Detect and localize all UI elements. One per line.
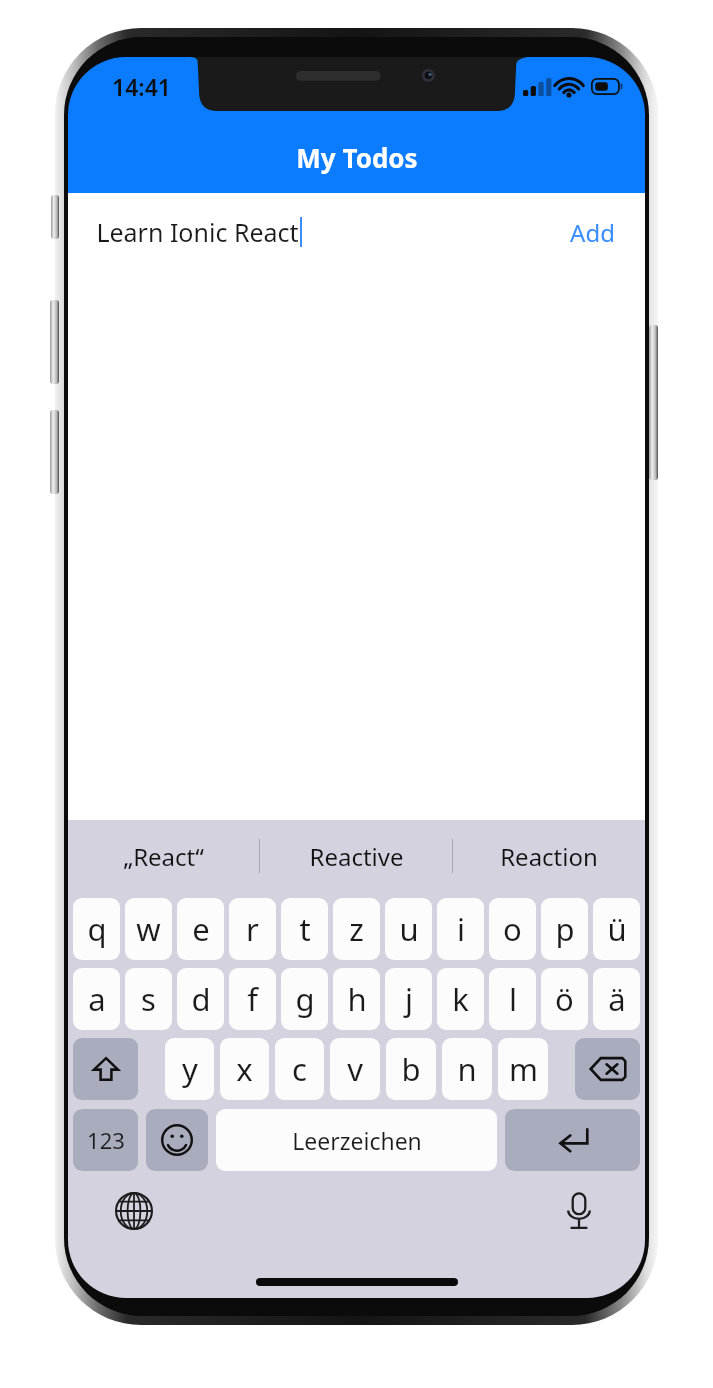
button[interactable]: s: [125, 968, 172, 1030]
staticText: Reactive: [309, 840, 404, 873]
button[interactable]: q: [73, 898, 120, 960]
staticText: t: [299, 908, 311, 950]
staticText: g: [295, 978, 315, 1020]
staticText: c: [292, 1048, 307, 1090]
button[interactable]: t: [281, 898, 328, 960]
button[interactable]: Leerzeichen: [216, 1109, 497, 1171]
staticText: d: [191, 978, 211, 1020]
button[interactable]: Change keyboard language: [108, 1185, 160, 1237]
button[interactable]: j: [385, 968, 432, 1030]
staticText: u: [399, 908, 419, 950]
button[interactable]: p: [541, 898, 588, 960]
button[interactable]: z: [333, 898, 380, 960]
staticText: 123: [87, 1125, 125, 1155]
button[interactable]: Backspace: [575, 1038, 640, 1100]
staticText: Add: [570, 216, 615, 249]
button[interactable]: o: [489, 898, 536, 960]
staticText: ö: [555, 978, 574, 1020]
staticText: y: [182, 1048, 198, 1090]
staticText: a: [88, 978, 106, 1020]
button[interactable]: Reactive: [260, 820, 452, 892]
staticText: h: [347, 978, 367, 1020]
staticText: ü: [607, 908, 627, 950]
button[interactable]: d: [177, 968, 224, 1030]
button[interactable]: i: [437, 898, 484, 960]
button[interactable]: e: [177, 898, 224, 960]
staticText: r: [246, 908, 259, 950]
button[interactable]: y: [165, 1038, 214, 1100]
button[interactable]: n: [442, 1038, 492, 1100]
button[interactable]: Add: [566, 210, 619, 255]
button[interactable]: ä: [593, 968, 640, 1030]
button[interactable]: h: [333, 968, 380, 1030]
button[interactable]: f: [229, 968, 276, 1030]
staticText: Leerzeichen: [292, 1125, 422, 1156]
staticText: n: [457, 1048, 477, 1090]
button[interactable]: Shift: [73, 1038, 138, 1100]
button[interactable]: r: [229, 898, 276, 960]
staticText: „React“: [123, 840, 204, 873]
staticText: ä: [608, 978, 626, 1020]
button[interactable]: v: [330, 1038, 380, 1100]
staticText: w: [136, 908, 161, 950]
staticText: l: [509, 978, 517, 1020]
button[interactable]: 123: [73, 1109, 138, 1171]
staticText: j: [405, 978, 413, 1020]
staticText: f: [247, 978, 258, 1020]
button[interactable]: u: [385, 898, 432, 960]
staticText: q: [87, 908, 107, 950]
button[interactable]: „React“: [68, 820, 259, 892]
button[interactable]: a: [73, 968, 120, 1030]
staticText: x: [236, 1048, 253, 1090]
button[interactable]: l: [489, 968, 536, 1030]
button[interactable]: w: [125, 898, 172, 960]
button[interactable]: c: [275, 1038, 324, 1100]
staticText: b: [401, 1048, 421, 1090]
button[interactable]: x: [220, 1038, 269, 1100]
staticText: Reaction: [500, 840, 598, 873]
button[interactable]: Return: [505, 1109, 640, 1171]
button[interactable]: Dictate: [553, 1185, 605, 1237]
button[interactable]: ü: [593, 898, 640, 960]
staticText: o: [503, 908, 522, 950]
button[interactable]: ö: [541, 968, 588, 1030]
staticText: Learn Ionic React: [96, 215, 299, 249]
staticText: s: [141, 978, 156, 1020]
staticText: p: [555, 908, 575, 950]
button[interactable]: Reaction: [453, 820, 645, 892]
button[interactable]: Emoji: [146, 1109, 208, 1171]
button[interactable]: Learn Ionic React: [68, 193, 645, 271]
button[interactable]: m: [498, 1038, 548, 1100]
staticText: i: [457, 908, 465, 950]
staticText: v: [347, 1048, 363, 1090]
staticText: e: [192, 908, 210, 950]
button[interactable]: b: [386, 1038, 436, 1100]
staticText: z: [349, 908, 364, 950]
staticText: My Todos: [296, 140, 418, 175]
button[interactable]: k: [437, 968, 484, 1030]
button[interactable]: g: [281, 968, 328, 1030]
staticText: 14:41: [112, 71, 171, 102]
staticText: m: [509, 1048, 538, 1090]
staticText: k: [452, 978, 469, 1020]
